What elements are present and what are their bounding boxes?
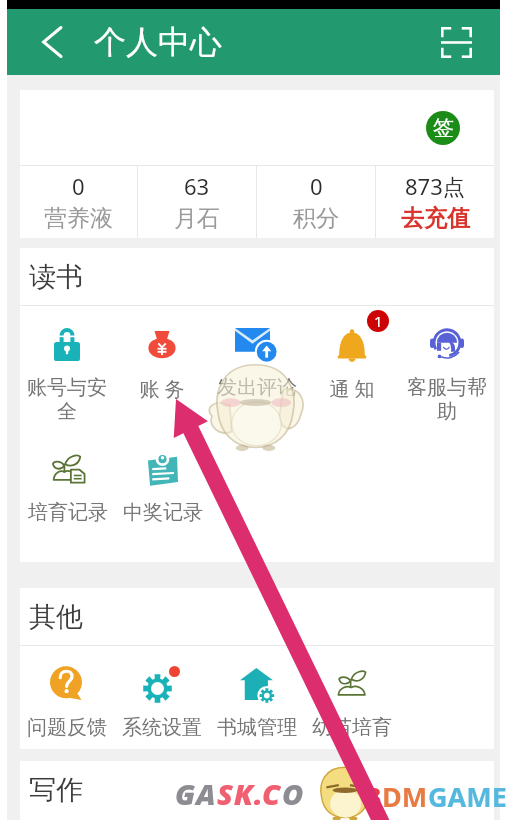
- staticText: 去充值: [401, 204, 470, 233]
- staticText: 书城管理: [217, 715, 297, 740]
- staticText: 其他: [29, 600, 83, 634]
- button[interactable]: 账号与安 全: [20, 322, 114, 424]
- button[interactable]: 幼苗培育: [304, 662, 399, 740]
- button[interactable]: Scan QR code: [412, 9, 500, 75]
- button[interactable]: 873点: [376, 166, 494, 238]
- button[interactable]: 签: [426, 111, 460, 145]
- button[interactable]: 培育记录: [20, 447, 115, 525]
- staticText: 账 务: [139, 375, 185, 402]
- staticText: 营养液: [44, 204, 113, 233]
- staticText: SK.C: [217, 774, 282, 813]
- staticText: 3: [366, 778, 382, 815]
- staticText: 培育记录: [28, 500, 108, 525]
- staticText: 幼苗培育: [312, 715, 392, 740]
- button[interactable]: 1: [304, 322, 399, 402]
- staticText: 签: [433, 115, 454, 141]
- staticText: 63: [184, 171, 210, 201]
- staticText: 账号与安 全: [27, 375, 107, 424]
- staticText: GAME: [428, 778, 506, 815]
- staticText: O: [282, 774, 305, 813]
- button[interactable]: 发出评论: [209, 322, 304, 400]
- staticText: 客服与帮 助: [407, 375, 487, 424]
- button[interactable]: 63: [138, 166, 256, 238]
- staticText: 1: [374, 311, 383, 331]
- button[interactable]: 客服与帮 助: [399, 322, 494, 424]
- staticText: 中奖记录: [123, 500, 203, 525]
- staticText: 0: [72, 171, 85, 201]
- button[interactable]: 书城管理: [209, 662, 304, 740]
- button[interactable]: 账 务: [114, 322, 209, 402]
- button[interactable]: 0: [20, 166, 137, 238]
- staticText: GA: [175, 774, 217, 813]
- staticText: 积分: [293, 204, 339, 233]
- staticText: DM: [382, 778, 428, 815]
- staticText: 个人中心: [94, 22, 222, 62]
- staticText: 读书: [29, 260, 83, 294]
- staticText: 873点: [405, 171, 465, 201]
- button[interactable]: 问题反馈: [20, 662, 114, 740]
- button[interactable]: Back: [7, 9, 87, 75]
- staticText: 写作: [29, 773, 83, 807]
- button[interactable]: 中奖记录: [115, 447, 210, 525]
- staticText: 月石: [174, 204, 220, 233]
- button[interactable]: 系统设置: [114, 662, 209, 740]
- staticText: 通 知: [329, 375, 375, 402]
- button[interactable]: 0: [257, 166, 375, 238]
- staticText: 系统设置: [122, 715, 202, 740]
- staticText: 问题反馈: [27, 715, 107, 740]
- staticText: 发出评论: [217, 375, 297, 400]
- staticText: 0: [310, 171, 323, 201]
